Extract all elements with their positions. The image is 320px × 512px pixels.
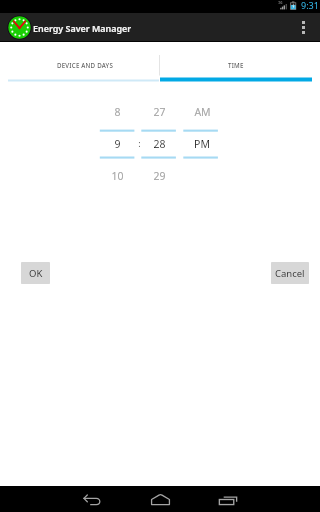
- button[interactable]: DEVICE AND DAYS: [0, 42, 160, 82]
- staticText: 27: [153, 105, 166, 119]
- button[interactable]: OK: [21, 262, 50, 284]
- button[interactable]: More options: [286, 13, 320, 42]
- staticText: 9:31: [301, 0, 319, 11]
- staticText: PM: [194, 137, 210, 151]
- staticText: TIME: [228, 61, 244, 69]
- staticText: Cancel: [275, 267, 305, 280]
- staticText: 10: [111, 169, 124, 183]
- button[interactable]: Cancel: [271, 262, 309, 284]
- staticText: 8: [114, 105, 121, 119]
- button[interactable]: Recent apps: [206, 486, 250, 512]
- button[interactable]: TIME: [160, 42, 320, 82]
- staticText: Energy Saver Manager: [33, 22, 132, 34]
- staticText: 9: [114, 137, 121, 151]
- staticText: :: [138, 137, 141, 149]
- button[interactable]: Home: [138, 486, 182, 512]
- button[interactable]: Back: [70, 486, 114, 512]
- staticText: DEVICE AND DAYS: [57, 61, 114, 69]
- staticText: 29: [153, 169, 166, 183]
- staticText: AM: [194, 105, 211, 119]
- staticText: 28: [153, 137, 166, 151]
- staticText: OK: [29, 267, 43, 280]
